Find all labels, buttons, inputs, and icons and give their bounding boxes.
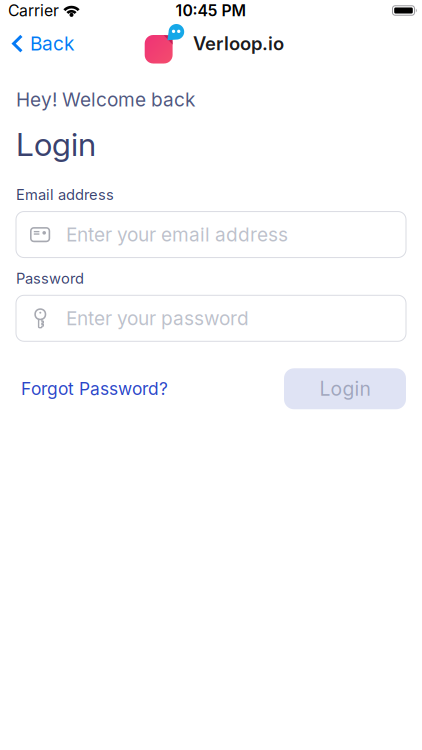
staticText: Enter your password	[66, 305, 283, 332]
staticText: Enter your password	[66, 307, 249, 330]
staticText: Login	[16, 125, 96, 164]
staticText: 10:45 PM	[175, 1, 246, 20]
staticText: Forgot Password?	[21, 378, 168, 399]
staticText: Verloop.io	[193, 32, 284, 55]
staticText: Enter your email address	[66, 221, 327, 248]
staticText: Email address	[16, 186, 114, 203]
staticText: Password	[16, 269, 84, 287]
staticText: Login	[319, 377, 370, 400]
staticText: Back	[30, 32, 74, 55]
textField[interactable]: Enter your email address	[66, 221, 394, 248]
button[interactable]: Login	[284, 368, 406, 409]
staticText: Hey! Welcome back	[16, 88, 195, 111]
staticText: Carrier	[8, 1, 59, 20]
button[interactable]: Back	[0, 32, 74, 55]
button[interactable]: Forgot Password?	[16, 378, 168, 399]
staticText: Enter your email address	[66, 223, 288, 246]
textField[interactable]: Enter your password	[66, 305, 394, 332]
